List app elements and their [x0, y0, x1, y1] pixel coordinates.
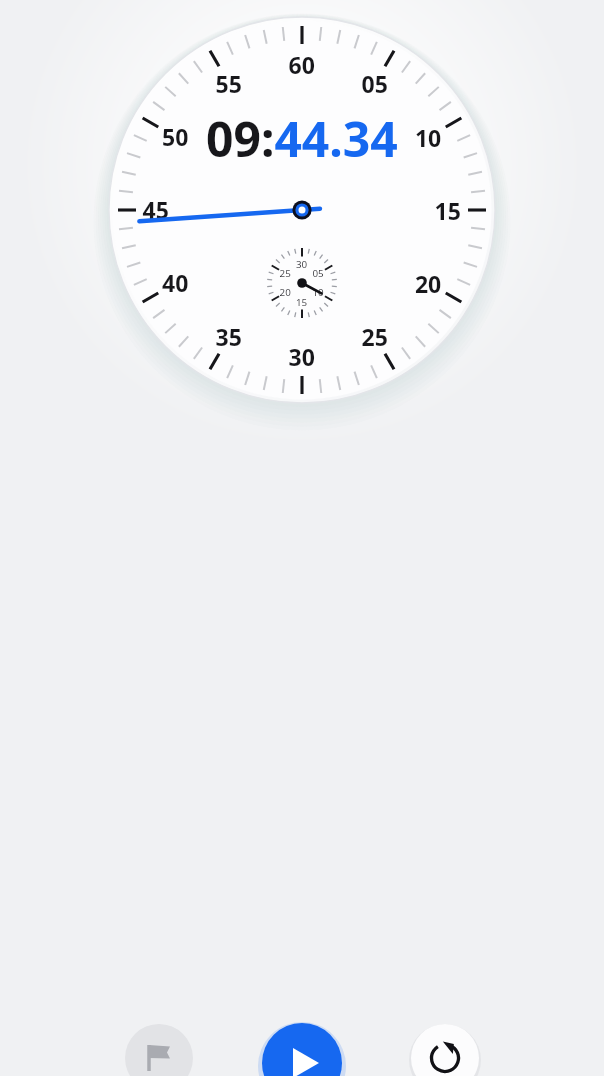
- button[interactable]: Lap: [125, 1024, 193, 1076]
- button[interactable]: Reset: [411, 1024, 479, 1076]
- button[interactable]: Start: [262, 1023, 342, 1076]
